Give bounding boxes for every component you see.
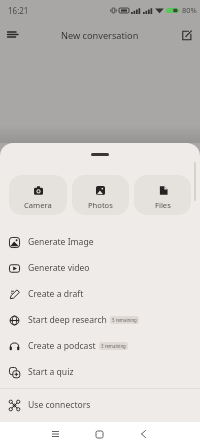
button[interactable]: Generate video	[0, 255, 200, 281]
button[interactable]: Camera	[9, 175, 67, 215]
staticText: Generate Image	[28, 236, 94, 248]
staticText: Create a podcast	[28, 340, 96, 352]
button[interactable]: Recents	[45, 424, 65, 444]
staticText: Start a quiz	[28, 366, 74, 378]
button[interactable]: Use connectors	[0, 392, 200, 418]
staticText: 3 remaining	[101, 343, 126, 349]
staticText: Files	[155, 200, 171, 210]
staticText: Photos	[88, 200, 113, 210]
staticText: 5 remaining	[112, 317, 137, 323]
button[interactable]: Files	[134, 175, 191, 215]
staticText: 16:21	[8, 5, 29, 16]
button[interactable]: Create a draft	[0, 281, 200, 307]
button[interactable]: Back	[133, 424, 153, 444]
staticText: Create a draft	[28, 288, 84, 300]
button[interactable]: Generate Image	[0, 229, 200, 255]
staticText: Generate video	[28, 262, 90, 274]
staticText: Use connectors	[28, 399, 91, 411]
staticText: Start deep research	[28, 314, 107, 326]
button[interactable]: Home	[89, 424, 109, 444]
button[interactable]: Start deep research	[0, 307, 200, 333]
staticText: 80%	[182, 5, 197, 15]
button[interactable]: Menu	[2, 24, 22, 44]
button[interactable]: New chat	[176, 25, 196, 45]
button[interactable]: Create a podcast	[0, 333, 200, 359]
button[interactable]: Photos	[72, 175, 129, 215]
staticText: Camera	[24, 200, 52, 210]
button[interactable]: Start a quiz	[0, 359, 200, 385]
staticText: New conversation	[61, 29, 139, 42]
